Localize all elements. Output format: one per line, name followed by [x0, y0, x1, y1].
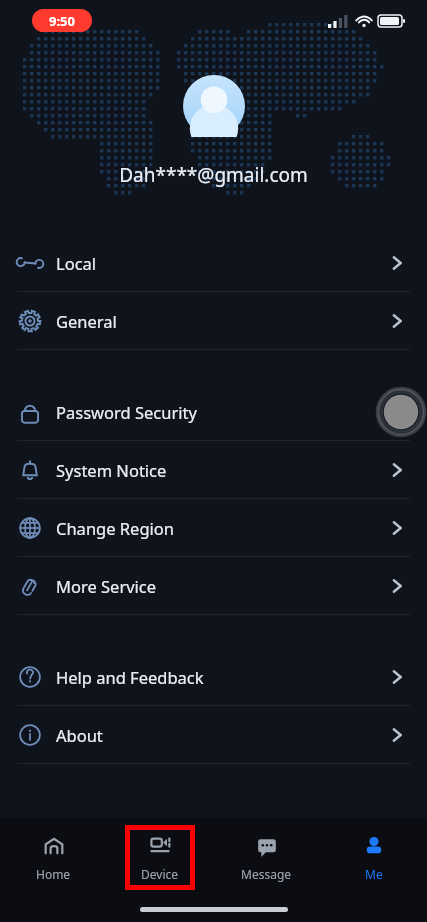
- staticText: Device: [141, 866, 179, 882]
- button[interactable]: Password Security: [0, 383, 427, 440]
- button[interactable]: Device: [106, 818, 213, 896]
- button[interactable]: General: [0, 292, 427, 349]
- staticText: Help and Feedback: [56, 666, 204, 688]
- button[interactable]: Help and Feedback: [0, 648, 427, 705]
- staticText: Password Security: [56, 401, 197, 423]
- button[interactable]: Local: [0, 234, 427, 291]
- button[interactable]: Me: [320, 818, 427, 896]
- staticText: Change Region: [56, 517, 174, 539]
- staticText: More Service: [56, 575, 157, 597]
- button[interactable]: System Notice: [0, 441, 427, 498]
- button[interactable]: Change Region: [0, 499, 427, 556]
- button[interactable]: More Service: [0, 557, 427, 614]
- staticText: General: [56, 310, 117, 332]
- staticText: Home: [36, 866, 71, 882]
- button[interactable]: Home: [0, 818, 106, 896]
- staticText: Me: [365, 866, 383, 882]
- button[interactable]: About: [0, 706, 427, 763]
- button[interactable]: Message: [213, 818, 320, 896]
- staticText: System Notice: [56, 459, 167, 481]
- staticText: 9:50: [49, 12, 75, 30]
- staticText: Dah****@gmail.com: [0, 162, 427, 188]
- staticText: Message: [241, 866, 292, 882]
- staticText: Local: [56, 252, 97, 274]
- staticText: About: [56, 724, 103, 746]
